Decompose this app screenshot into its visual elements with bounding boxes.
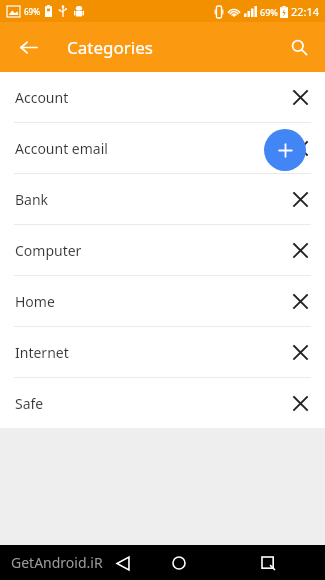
button[interactable]: Delete Internet — [284, 336, 316, 368]
staticText: Bank — [15, 190, 284, 209]
button[interactable]: Account email — [0, 123, 325, 173]
button[interactable]: Delete Safe — [284, 387, 316, 419]
button[interactable]: Home — [163, 547, 195, 579]
button[interactable]: Safe — [0, 378, 325, 428]
staticText: 69% — [24, 6, 40, 17]
button[interactable]: Search — [282, 30, 316, 64]
button[interactable]: Delete Home — [284, 285, 316, 317]
button[interactable]: Account — [0, 72, 325, 122]
button[interactable]: Back — [107, 547, 139, 579]
button[interactable]: Add category — [264, 129, 306, 171]
staticText: Account — [15, 88, 284, 107]
button[interactable]: Computer — [0, 225, 325, 275]
staticText: Account email — [15, 139, 284, 158]
staticText: 22:14 — [291, 4, 320, 19]
staticText: Home — [15, 292, 284, 311]
button[interactable]: Internet — [0, 327, 325, 377]
staticText: Internet — [15, 343, 284, 362]
button[interactable]: Delete Account — [284, 81, 316, 113]
staticText: Safe — [15, 394, 284, 413]
button[interactable]: Back — [12, 31, 44, 63]
button[interactable]: Delete Bank — [284, 183, 316, 215]
staticText: 69% — [260, 6, 278, 18]
staticText: Categories — [67, 36, 153, 59]
button[interactable]: Bank — [0, 174, 325, 224]
button[interactable]: Recent apps — [252, 547, 284, 579]
staticText: Computer — [15, 241, 284, 260]
staticText: GetAndroid.iR — [11, 553, 103, 572]
button[interactable]: Delete Computer — [284, 234, 316, 266]
button[interactable]: Home — [0, 276, 325, 326]
button[interactable]: Delete Account email — [284, 132, 316, 164]
